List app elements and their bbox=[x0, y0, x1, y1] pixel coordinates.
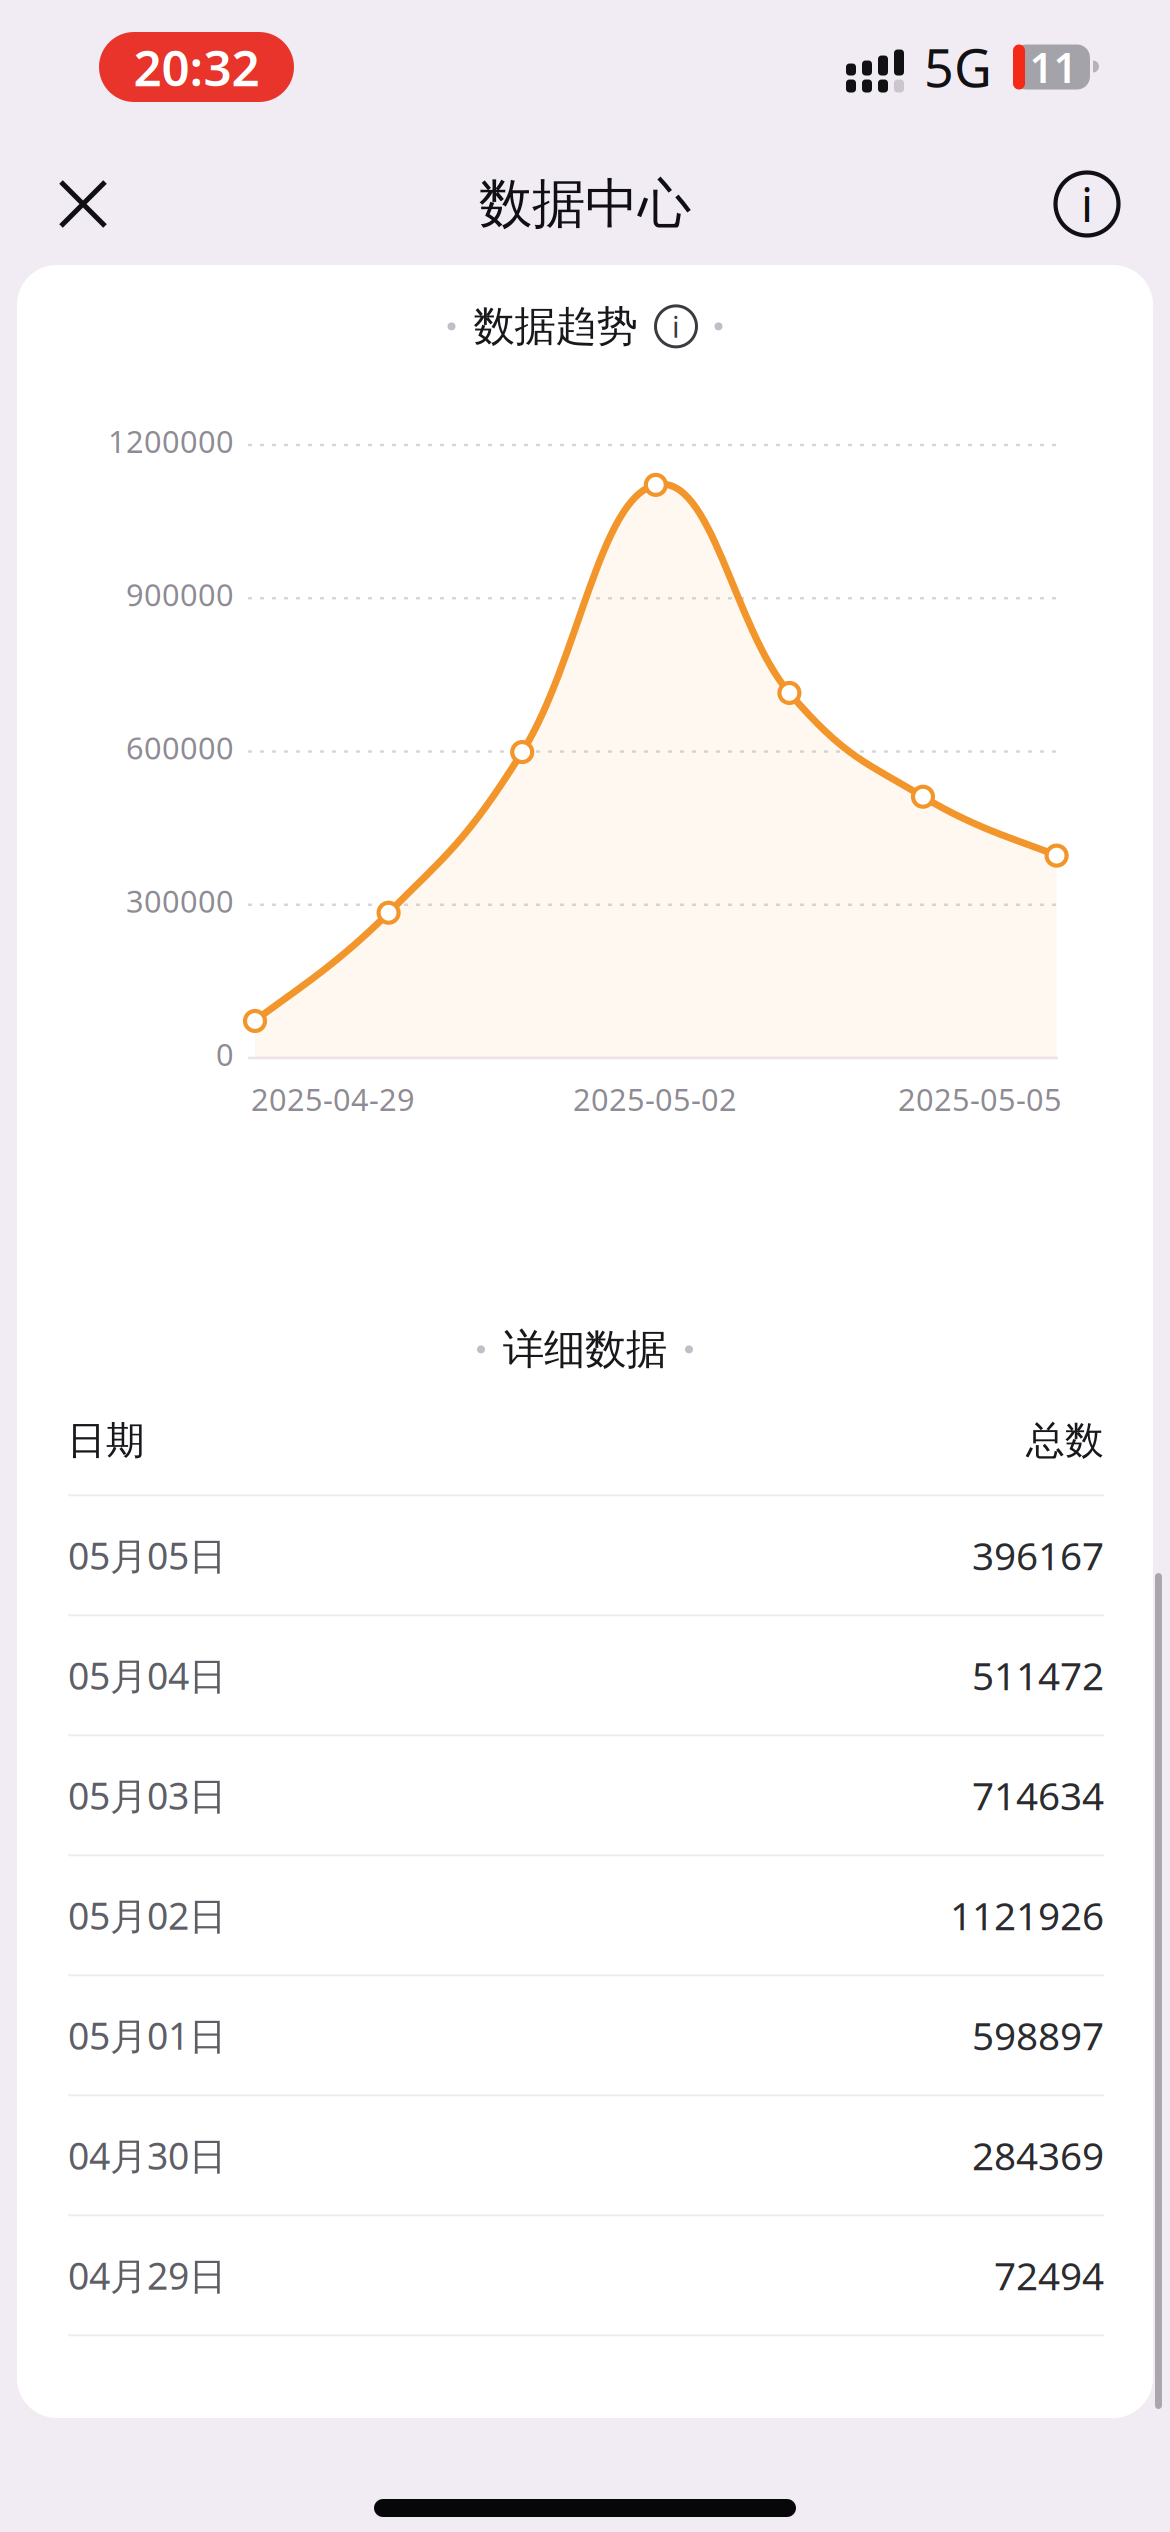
button[interactable]: 05月01日 bbox=[68, 1976, 1104, 2094]
staticText: 511472 bbox=[972, 1650, 1104, 1701]
staticText: 05月04日 bbox=[68, 1650, 226, 1700]
staticText: 72494 bbox=[994, 2250, 1104, 2301]
staticText: 900000 bbox=[126, 574, 234, 615]
staticText: 5G bbox=[924, 32, 992, 102]
staticText: 2025-05-02 bbox=[573, 1079, 737, 1119]
staticText: 300000 bbox=[126, 880, 234, 921]
staticText: 日期 bbox=[67, 1417, 145, 1464]
button[interactable]: 05月05日 bbox=[68, 1496, 1104, 1614]
staticText: 1200000 bbox=[108, 421, 234, 461]
staticText: 284369 bbox=[972, 2130, 1104, 2181]
staticText: 598897 bbox=[972, 2010, 1104, 2061]
button[interactable]: 05月03日 bbox=[68, 1736, 1104, 1854]
button[interactable]: 04月29日 bbox=[68, 2216, 1104, 2334]
button[interactable]: 数据说明 bbox=[655, 306, 696, 347]
staticText: 数据趋势 bbox=[473, 301, 637, 352]
staticText: 05月05日 bbox=[68, 1530, 226, 1580]
staticText: 04月29日 bbox=[68, 2250, 226, 2300]
button[interactable]: 05月04日 bbox=[68, 1616, 1104, 1734]
staticText: 总数 bbox=[1026, 1417, 1104, 1464]
staticText: 2025-05-05 bbox=[898, 1079, 1062, 1119]
button[interactable]: 05月02日 bbox=[68, 1856, 1104, 1974]
staticText: 2025-04-29 bbox=[251, 1079, 415, 1119]
staticText: 11 bbox=[1029, 40, 1077, 94]
staticText: 数据中心 bbox=[479, 171, 691, 237]
staticText: 05月03日 bbox=[68, 1770, 226, 1820]
staticText: 714634 bbox=[972, 1770, 1104, 1821]
button[interactable]: 04月30日 bbox=[68, 2096, 1104, 2214]
staticText: 0 bbox=[216, 1034, 234, 1074]
staticText: i bbox=[672, 307, 680, 346]
staticText: 05月01日 bbox=[68, 2010, 226, 2060]
button[interactable]: 关闭 bbox=[28, 149, 138, 259]
staticText: 1121926 bbox=[950, 1890, 1104, 1941]
staticText: 04月30日 bbox=[68, 2130, 226, 2180]
staticText: 600000 bbox=[126, 727, 234, 768]
button[interactable]: 说明 bbox=[1032, 149, 1142, 259]
staticText: 20:32 bbox=[133, 34, 259, 100]
staticText: 详细数据 bbox=[503, 1324, 667, 1375]
staticText: 396167 bbox=[972, 1530, 1104, 1581]
staticText: i bbox=[1081, 173, 1093, 235]
staticText: 05月02日 bbox=[68, 1890, 226, 1940]
